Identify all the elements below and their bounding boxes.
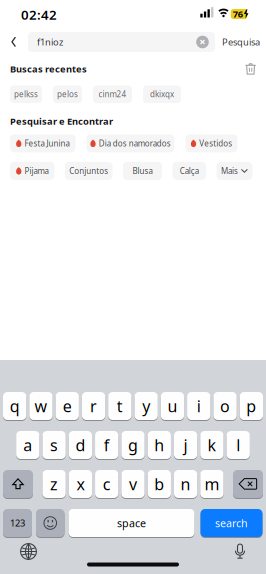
staticText: space — [117, 516, 146, 530]
staticText: 123 — [10, 517, 25, 529]
staticText: z — [50, 473, 58, 495]
button[interactable]: Clear search text — [196, 35, 209, 48]
staticText: s — [50, 434, 58, 456]
button[interactable]: x — [69, 470, 92, 498]
button[interactable]: Conjuntos — [65, 162, 112, 180]
button[interactable]: b — [148, 470, 171, 498]
button[interactable]: o — [213, 392, 237, 420]
button[interactable]: f1nioz — [28, 32, 215, 52]
button[interactable]: Next keyboard — [20, 543, 37, 560]
button[interactable]: cinm24 — [93, 85, 132, 103]
button[interactable]: l — [227, 431, 250, 459]
button[interactable]: Dia dos namorados — [86, 134, 174, 152]
staticText: Vestidos — [199, 138, 232, 149]
staticText: Dia dos namorados — [99, 138, 171, 149]
staticText: c — [103, 473, 111, 495]
staticText: pelos — [57, 89, 78, 99]
button[interactable]: Pesquisa — [222, 36, 260, 48]
button[interactable]: f — [95, 431, 118, 459]
staticText: Conjuntos — [69, 166, 108, 176]
button[interactable]: a — [16, 431, 39, 459]
staticText: k — [207, 434, 216, 456]
button[interactable]: Shift — [3, 470, 33, 498]
staticText: u — [167, 395, 177, 417]
staticText: Calça — [180, 166, 199, 176]
button[interactable]: Blusa — [123, 162, 162, 180]
staticText: p — [246, 395, 256, 417]
button[interactable]: Back — [6, 37, 22, 47]
button[interactable]: m — [200, 470, 223, 498]
staticText: search — [215, 516, 248, 530]
button[interactable]: u — [161, 392, 184, 420]
staticText: v — [129, 473, 137, 495]
staticText: 02:42 — [21, 6, 57, 23]
staticText: y — [142, 395, 150, 417]
button[interactable]: pelos — [53, 85, 82, 103]
button[interactable]: r — [82, 392, 105, 420]
staticText: Buscas recentes — [10, 63, 87, 75]
staticText: o — [220, 395, 230, 417]
button[interactable]: n — [174, 470, 197, 498]
staticText: Pesquisa — [222, 36, 260, 48]
staticText: 76 — [233, 8, 243, 20]
button[interactable]: Vestidos — [185, 134, 237, 152]
button[interactable]: h — [148, 431, 171, 459]
button[interactable]: e — [56, 392, 79, 420]
button[interactable]: t — [108, 392, 131, 420]
staticText: f — [104, 434, 110, 456]
button[interactable]: z — [42, 470, 66, 498]
staticText: Pijama — [24, 166, 48, 176]
button[interactable]: pelkss — [10, 85, 42, 103]
button[interactable]: j — [174, 431, 197, 459]
button[interactable]: Mais — [216, 162, 252, 180]
button[interactable]: Dictation — [234, 543, 245, 559]
button[interactable]: Pijama — [10, 162, 54, 180]
button[interactable]: i — [187, 392, 210, 420]
staticText: h — [154, 434, 164, 456]
staticText: w — [34, 395, 47, 417]
staticText: q — [10, 395, 20, 417]
staticText: t — [117, 395, 123, 417]
staticText: e — [63, 395, 72, 417]
staticText: a — [23, 434, 32, 456]
staticText: pelkss — [14, 89, 38, 99]
button[interactable]: g — [121, 431, 145, 459]
button[interactable]: p — [240, 392, 263, 420]
staticText: Pesquisar e Encontrar — [10, 115, 113, 127]
button[interactable]: search — [200, 509, 262, 537]
staticText: dkixqx — [150, 89, 174, 99]
staticText: n — [181, 473, 191, 495]
button[interactable]: dkixqx — [143, 85, 181, 103]
button[interactable]: 123 — [3, 509, 32, 537]
staticText: j — [184, 434, 188, 456]
button[interactable]: s — [42, 431, 66, 459]
button[interactable]: w — [29, 392, 53, 420]
button[interactable]: k — [200, 431, 223, 459]
staticText: d — [75, 434, 85, 456]
button[interactable]: Festa Junina — [10, 134, 75, 152]
staticText: b — [154, 473, 164, 495]
button[interactable]: Delete — [233, 470, 263, 498]
button[interactable]: q — [3, 392, 26, 420]
staticText: Blusa — [132, 166, 152, 176]
button[interactable]: d — [69, 431, 92, 459]
staticText: f1nioz — [37, 36, 63, 48]
staticText: g — [128, 434, 138, 456]
button[interactable]: y — [134, 392, 158, 420]
staticText: x — [76, 473, 84, 495]
staticText: Mais — [221, 166, 238, 176]
staticText: cinm24 — [98, 89, 126, 99]
button[interactable]: Emoji — [36, 509, 64, 537]
staticText: r — [90, 395, 97, 417]
button[interactable]: Clear recent searches — [245, 63, 256, 74]
button[interactable]: Calça — [172, 162, 206, 180]
button[interactable]: c — [95, 470, 118, 498]
staticText: m — [204, 473, 219, 495]
staticText: Festa Junina — [24, 138, 69, 149]
staticText: l — [236, 434, 240, 456]
button[interactable]: space — [68, 509, 194, 537]
staticText: i — [197, 395, 201, 417]
button[interactable]: v — [121, 470, 145, 498]
